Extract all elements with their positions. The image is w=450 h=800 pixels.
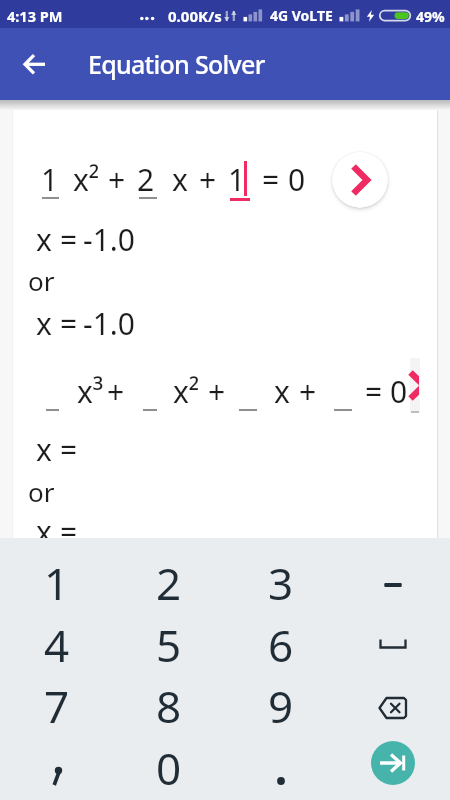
- staticText: x²: [73, 159, 100, 200]
- staticText: 4: [44, 615, 70, 675]
- staticText: =: [60, 429, 78, 470]
- staticText: +: [199, 159, 217, 200]
- staticText: x: [36, 511, 52, 552]
- staticText: 8: [156, 676, 182, 736]
- button[interactable]: [408, 358, 419, 412]
- button[interactable]: [1, 738, 113, 799]
- staticText: =: [262, 159, 280, 200]
- button[interactable]: 8: [113, 675, 225, 736]
- staticText: 1: [41, 159, 59, 200]
- staticText: x: [172, 159, 188, 200]
- staticText: +: [107, 371, 125, 412]
- button[interactable]: [337, 677, 449, 738]
- staticText: 1: [44, 553, 70, 613]
- staticText: 49%: [416, 7, 445, 26]
- staticText: x: [36, 219, 52, 260]
- staticText: =: [60, 219, 78, 260]
- staticText: 3: [268, 553, 294, 613]
- staticText: -1.0: [83, 219, 136, 260]
- button[interactable]: 6: [225, 614, 337, 675]
- staticText: 0: [390, 371, 408, 412]
- button[interactable]: [337, 615, 449, 676]
- button[interactable]: 4: [1, 614, 113, 675]
- button[interactable]: 5: [113, 614, 225, 675]
- button[interactable]: 7: [1, 675, 113, 736]
- staticText: x: [274, 371, 290, 412]
- staticText: -1.0: [83, 303, 136, 344]
- staticText: or: [28, 474, 55, 509]
- staticText: =: [60, 511, 78, 552]
- staticText: x³: [77, 371, 104, 412]
- button[interactable]: [332, 152, 388, 208]
- staticText: x: [36, 429, 52, 470]
- staticText: 2: [156, 553, 182, 613]
- staticText: 6: [268, 615, 294, 675]
- staticText: 5: [156, 615, 182, 675]
- staticText: +: [108, 159, 126, 200]
- staticText: 0: [156, 738, 182, 798]
- staticText: +: [208, 371, 226, 412]
- button[interactable]: 2: [113, 552, 225, 613]
- button[interactable]: [371, 741, 415, 785]
- staticText: 0.00K/s: [168, 6, 222, 26]
- staticText: =: [60, 303, 78, 344]
- staticText: 0: [288, 159, 306, 200]
- staticText: 4G VoLTE: [270, 6, 333, 25]
- staticText: +: [299, 371, 317, 412]
- staticText: 7: [44, 676, 70, 736]
- button[interactable]: 1: [1, 552, 113, 613]
- staticText: 1: [228, 159, 246, 200]
- button[interactable]: 9: [225, 675, 337, 736]
- staticText: x: [36, 303, 52, 344]
- button[interactable]: 0: [113, 737, 225, 798]
- staticText: x²: [173, 371, 200, 412]
- button[interactable]: 3: [225, 552, 337, 613]
- staticText: =: [365, 371, 383, 412]
- staticText: Equation Solver: [88, 47, 265, 81]
- button[interactable]: [225, 736, 337, 797]
- button[interactable]: [337, 554, 449, 615]
- staticText: or: [28, 263, 55, 298]
- staticText: 9: [268, 676, 294, 736]
- staticText: 2: [137, 159, 155, 200]
- button[interactable]: [14, 44, 54, 84]
- staticText: 4:13 PM: [7, 6, 63, 26]
